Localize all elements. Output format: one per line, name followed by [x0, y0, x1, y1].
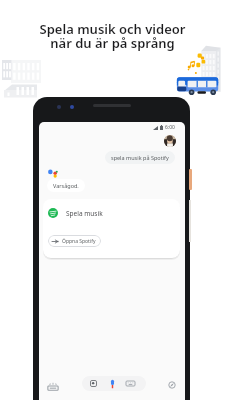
- staticText: Öppna Spotify: [62, 238, 96, 245]
- button[interactable]: Translate: [45, 378, 61, 394]
- button[interactable]: Spela musik: [43, 199, 180, 258]
- staticText: Spela musik: [66, 209, 103, 218]
- other: Google Lens: [90, 380, 97, 387]
- other: Voice search: [108, 379, 117, 389]
- button[interactable]: Explore: [167, 380, 177, 390]
- staticText: spela musik på Spotify: [111, 154, 169, 161]
- button[interactable]: Öppna Spotify: [48, 235, 101, 247]
- other: Keyboard: [126, 381, 135, 386]
- staticText: Varsågod.: [53, 182, 79, 189]
- staticText: Spela musik och videor när du är på språ…: [0, 20, 225, 52]
- staticText: 6:00: [165, 124, 175, 131]
- button[interactable]: Google Lens: [82, 376, 146, 391]
- button[interactable]: Account: [164, 135, 176, 147]
